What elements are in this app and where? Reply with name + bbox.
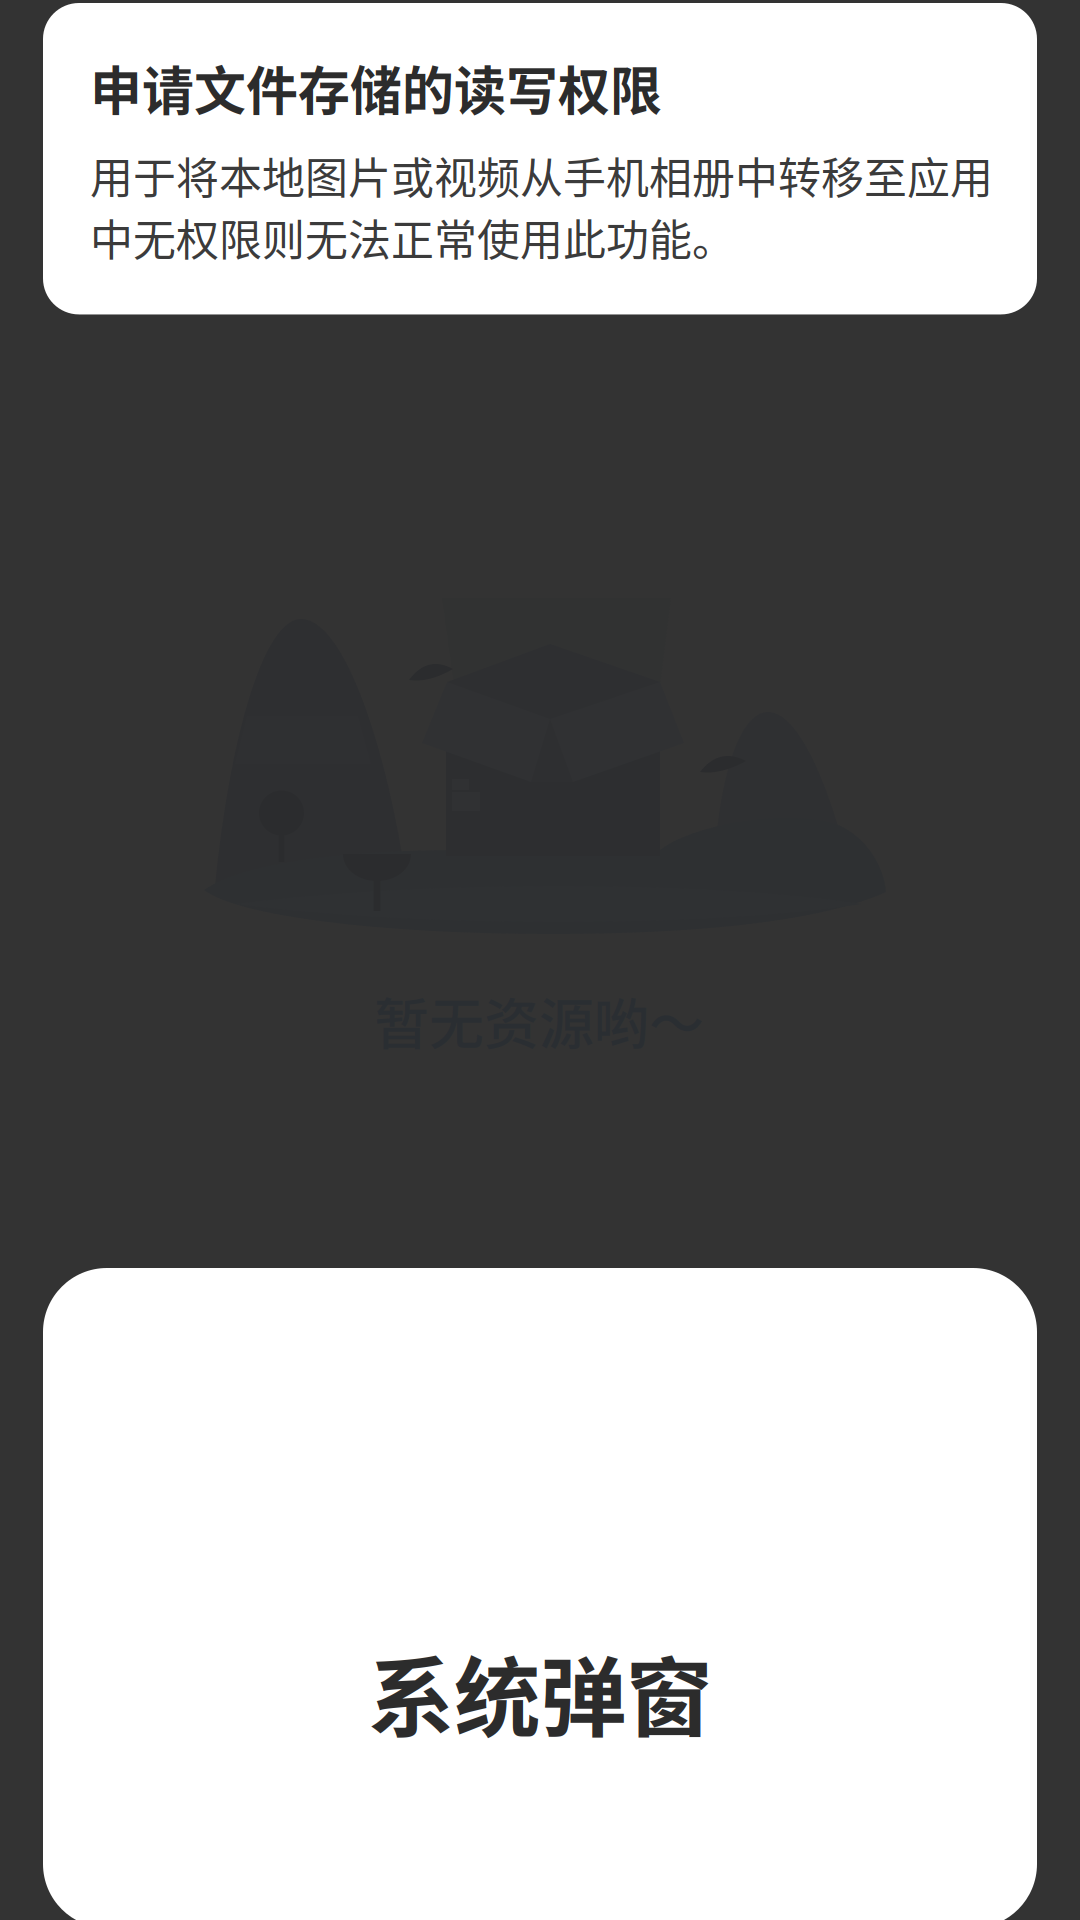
staticText: 申请文件存储的读写权限: [90, 50, 662, 125]
button[interactable]: 系统弹窗: [43, 1268, 1037, 1920]
staticText: 用于将本地图片或视频从手机相册中转移至应用中无权限则无法正常使用此功能。: [90, 144, 993, 268]
button[interactable]: 申请文件存储的读写权限: [43, 3, 1037, 314]
staticText: 暂无资源哟～: [374, 980, 704, 1059]
staticText: 系统弹窗: [368, 1629, 712, 1754]
